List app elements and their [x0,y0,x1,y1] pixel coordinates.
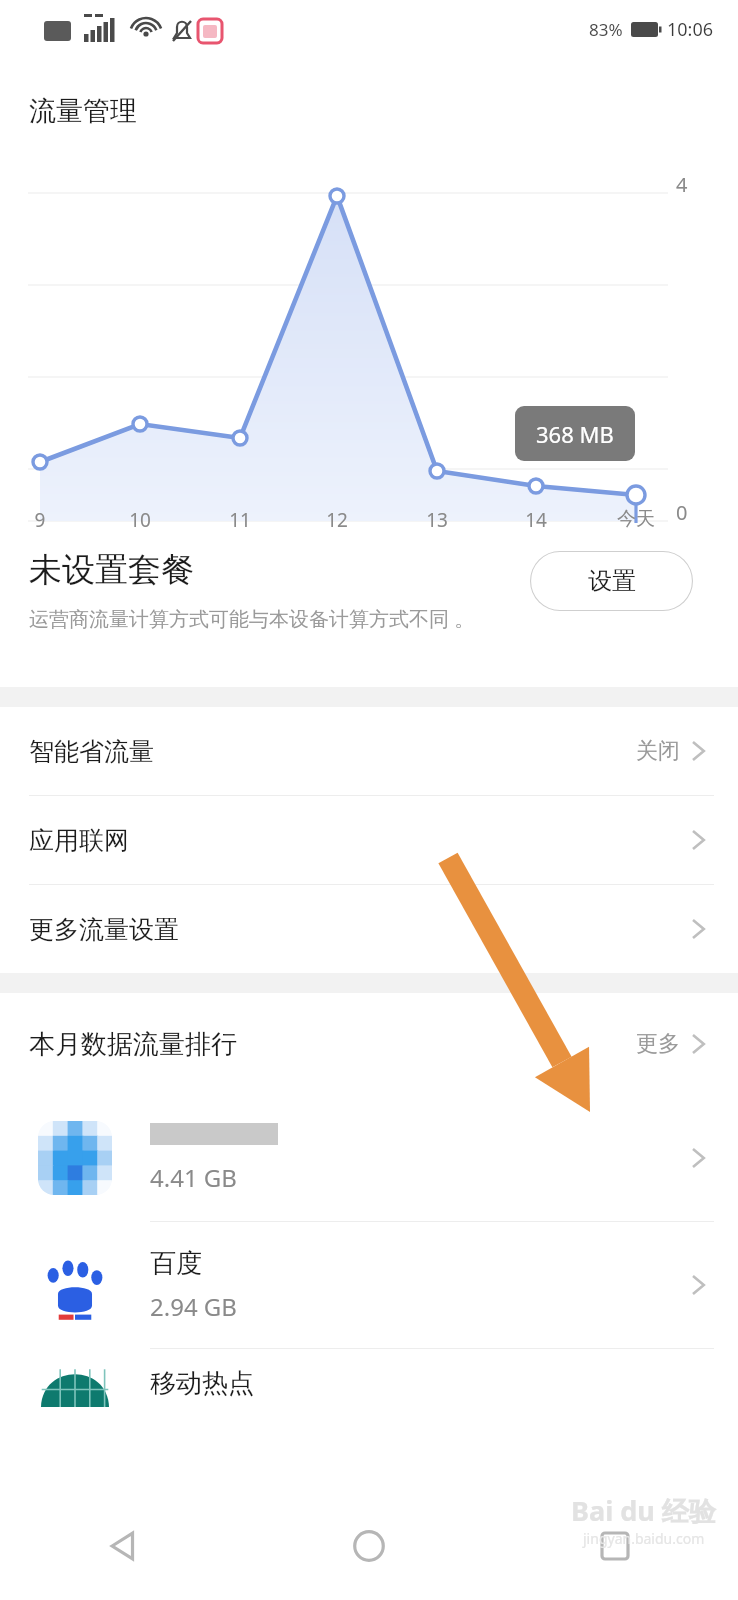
staticText: 0 [676,499,688,526]
staticText: 设置 [588,566,636,596]
staticText: Bai du 经验 [571,1492,716,1529]
button[interactable]: Back [0,1492,246,1600]
staticText: 13 [402,507,472,533]
button[interactable]: Home [246,1492,492,1600]
staticText: 10:06 [667,17,714,42]
staticText: 更多流量设置 [29,914,179,945]
staticText: 11 [205,507,275,533]
staticText: 智能省流量 [29,736,154,767]
button[interactable]: 更多流量设置 [0,885,738,973]
staticText: 本月数据流量排行 [29,1028,237,1061]
staticText: 2.94 GB [150,1290,237,1323]
staticText: 关闭 [636,737,680,765]
staticText: 未设置套餐 [29,549,194,591]
button[interactable]: 百度 [0,1222,738,1348]
staticText: 运营商流量计算方式可能与本设备计算方式不同 。 [29,605,475,632]
staticText: jingyan.baidu.com [583,1529,705,1548]
staticText: 应用联网 [29,825,129,856]
staticText: 4 [676,171,688,198]
staticText: 今天 [601,507,671,531]
button[interactable]: 智能省流量 [0,707,738,795]
staticText: 14 [501,507,571,533]
button[interactable]: 4.41 GB [0,1095,738,1221]
staticText: 流量管理 [29,94,137,128]
staticText: 368 MB [536,419,614,449]
staticText: 83% [589,18,623,41]
button[interactable]: 应用联网 [0,796,738,884]
staticText: 4.41 GB [150,1161,237,1194]
button[interactable]: 设置 [530,551,693,611]
staticText: 移动热点 [150,1367,254,1400]
staticText: 更多 [636,1030,680,1058]
button[interactable]: 移动热点 [0,1349,738,1439]
button[interactable]: Recent apps [492,1492,738,1600]
staticText: 百度 [150,1247,202,1280]
staticText: 12 [302,507,372,533]
button[interactable]: 本月数据流量排行 [0,993,738,1095]
staticText: 9 [5,507,75,533]
staticText: 10 [105,507,175,533]
